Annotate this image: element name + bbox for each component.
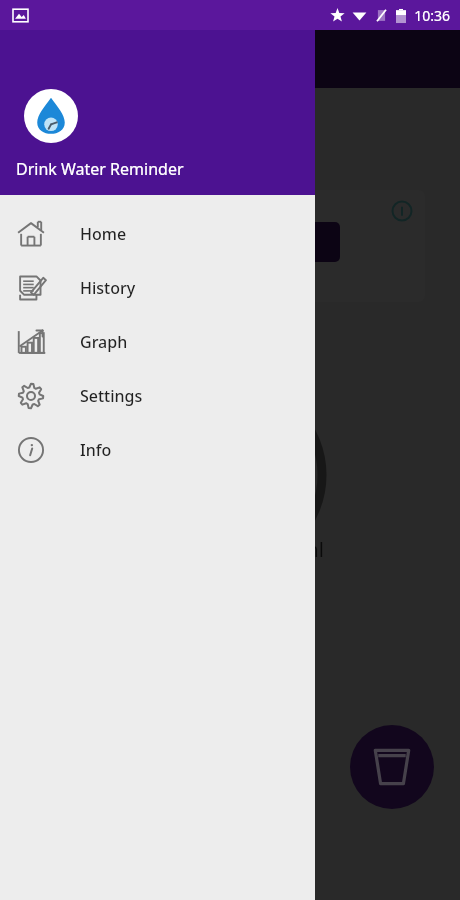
button[interactable]: OPEN [200, 222, 340, 262]
staticText: History [80, 277, 136, 299]
button[interactable]: Add water [350, 725, 434, 809]
staticText: ml [300, 536, 324, 563]
staticText: Home [80, 223, 127, 245]
button[interactable]: Info [188, 190, 425, 302]
staticText: Settings [80, 385, 143, 407]
staticText: Graph [80, 331, 128, 353]
button[interactable]: Info [0, 423, 315, 477]
button[interactable]: Home [0, 207, 315, 261]
staticText: Drink Water Reminder [16, 158, 184, 180]
button[interactable]: Settings [0, 369, 315, 423]
button[interactable]: History [0, 261, 315, 315]
button[interactable]: Info [391, 200, 413, 222]
staticText: 10:36 [414, 6, 450, 25]
staticText: Info [80, 439, 112, 461]
button[interactable]: Graph [0, 315, 315, 369]
